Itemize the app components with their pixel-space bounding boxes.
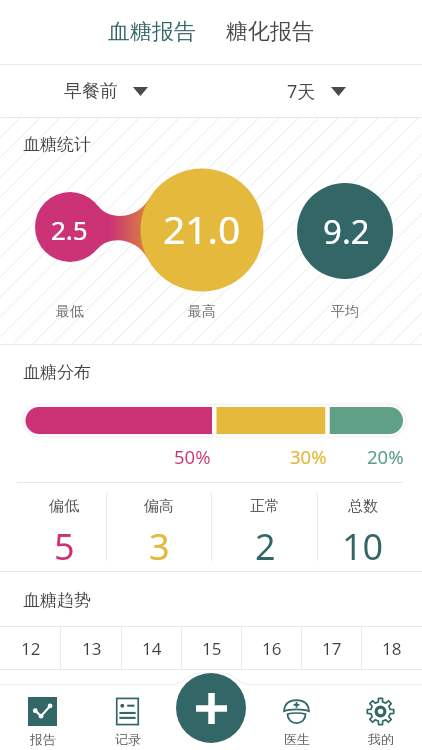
button[interactable]: 14: [122, 627, 182, 669]
staticText: 糖化报告: [226, 18, 314, 46]
button[interactable]: 17: [302, 627, 362, 669]
staticText: 16: [262, 637, 282, 660]
button[interactable]: 早餐前: [0, 65, 211, 117]
button[interactable]: 我的: [338, 697, 422, 750]
staticText: 14: [142, 637, 162, 660]
staticText: 9.2: [323, 209, 370, 254]
staticText: 医生: [284, 731, 310, 747]
staticText: 血糖分布: [23, 362, 91, 383]
button[interactable]: 16: [242, 627, 302, 669]
staticText: 血糖统计: [23, 134, 91, 155]
staticText: 记录: [115, 731, 141, 747]
staticText: 7天: [287, 79, 316, 104]
staticText: 报告: [30, 731, 56, 747]
staticText: 我的: [368, 731, 394, 747]
button[interactable]: 偏高: [106, 482, 212, 571]
staticText: 10: [342, 522, 384, 571]
staticText: 5: [54, 522, 75, 571]
staticText: 20%: [367, 444, 404, 466]
button[interactable]: 记录: [85, 697, 170, 750]
staticText: 血糖报告: [108, 18, 196, 46]
staticText: 21.0: [163, 202, 241, 254]
button[interactable]: 医生: [254, 697, 338, 750]
staticText: 50%: [174, 444, 211, 466]
staticText: 2.5: [51, 212, 88, 247]
button[interactable]: 15: [182, 627, 242, 669]
staticText: 2: [255, 522, 276, 571]
button[interactable]: Add record: [176, 673, 246, 743]
button[interactable]: 报告: [0, 697, 85, 750]
button[interactable]: 正常: [212, 482, 318, 571]
staticText: 最高: [188, 303, 216, 321]
staticText: 早餐前: [64, 80, 118, 103]
button[interactable]: 糖化报告: [211, 9, 324, 55]
button[interactable]: 12: [0, 627, 61, 669]
staticText: 18: [382, 637, 402, 660]
button[interactable]: 7天: [211, 65, 422, 117]
staticText: 13: [82, 637, 102, 660]
button[interactable]: 偏低: [22, 482, 106, 571]
button[interactable]: 总数: [318, 482, 407, 571]
button[interactable]: 13: [61, 627, 122, 669]
staticText: 17: [322, 637, 342, 660]
button[interactable]: 血糖报告: [98, 9, 211, 55]
staticText: 最低: [56, 303, 84, 321]
button[interactable]: 18: [362, 627, 422, 669]
staticText: 偏高: [144, 497, 174, 516]
staticText: 30%: [290, 444, 327, 466]
staticText: 12: [21, 637, 41, 660]
staticText: 总数: [348, 497, 378, 516]
staticText: 正常: [250, 497, 280, 516]
staticText: 血糖趋势: [23, 590, 91, 611]
staticText: 15: [202, 637, 222, 660]
staticText: 平均: [331, 303, 359, 321]
staticText: 3: [149, 522, 170, 571]
staticText: 偏低: [49, 497, 79, 516]
